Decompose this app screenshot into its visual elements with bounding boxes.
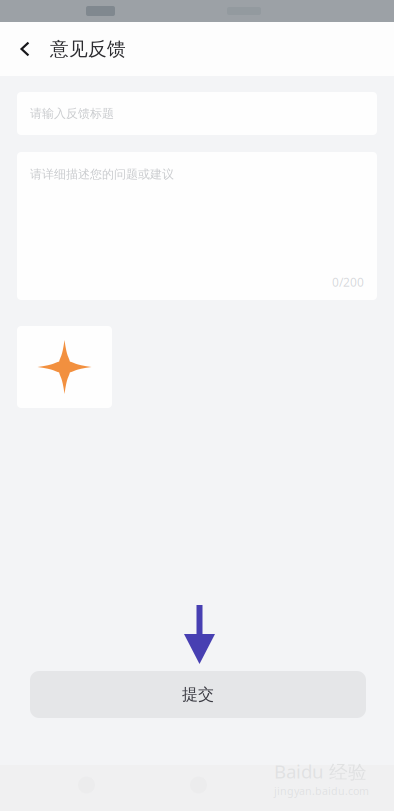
- button[interactable]: 请详细描述您的问题或建议: [17, 152, 377, 300]
- staticText: jingyan.baidu.com: [274, 784, 369, 798]
- staticText: 请详细描述您的问题或建议: [30, 167, 174, 182]
- button[interactable]: 提交: [30, 671, 366, 718]
- staticText: 提交: [182, 685, 214, 704]
- button[interactable]: 添加图片: [17, 326, 112, 408]
- button[interactable]: 返回: [0, 22, 50, 76]
- button[interactable]: 请输入反馈标题: [17, 92, 377, 135]
- staticText: 0/200: [332, 274, 364, 290]
- staticText: Baidu 经验: [274, 759, 367, 784]
- staticText: 意见反馈: [50, 37, 126, 60]
- staticText: 请输入反馈标题: [30, 106, 114, 121]
